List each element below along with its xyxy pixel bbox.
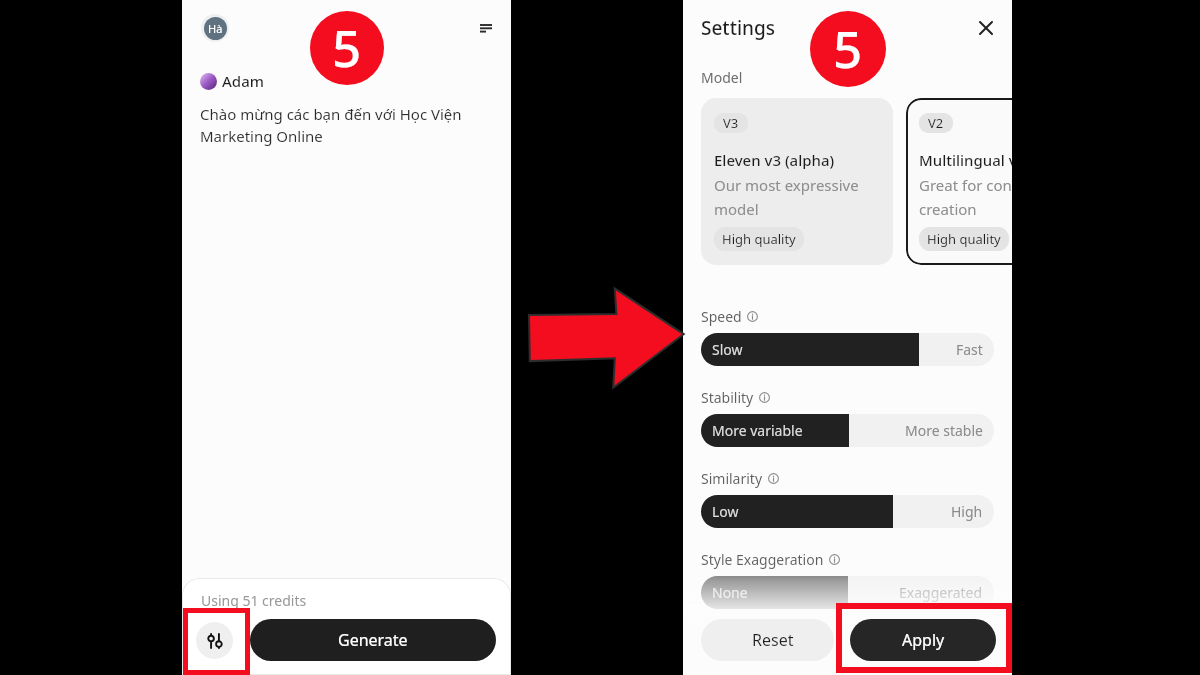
staticText: Similarity: [701, 469, 763, 488]
staticText: More variable: [712, 421, 803, 440]
button[interactable]: Close: [973, 15, 999, 41]
staticText: Stability: [701, 388, 754, 407]
staticText: V2: [928, 114, 944, 132]
button[interactable]: Generate: [250, 619, 496, 661]
staticText: Adam: [222, 71, 264, 91]
staticText: Style Exaggeration: [701, 550, 824, 569]
button[interactable]: Reset: [701, 619, 834, 661]
staticText: Slow: [712, 340, 743, 359]
staticText: High quality: [927, 230, 1001, 248]
staticText: Fast: [956, 340, 983, 359]
staticText: Reset: [752, 629, 794, 651]
staticText: Using 51 credits: [201, 591, 307, 610]
staticText: Eleven v3 (alpha): [714, 150, 835, 170]
staticText: 5: [332, 12, 362, 81]
staticText: High: [951, 502, 983, 521]
button[interactable]: More variable: [701, 414, 994, 447]
staticText: Great for content creation: [919, 175, 1012, 219]
staticText: More stable: [905, 421, 983, 440]
staticText: Exaggerated: [899, 583, 983, 602]
staticText: V3: [723, 114, 739, 132]
button[interactable]: V2: [906, 98, 1012, 265]
button[interactable]: Slow: [701, 333, 994, 366]
staticText: Chào mừng các bạn đến với Học Viện Marke…: [200, 104, 483, 147]
staticText: None: [712, 583, 748, 602]
staticText: Our most expressive model: [714, 175, 867, 219]
staticText: Settings: [701, 15, 775, 41]
staticText: Hà: [208, 21, 223, 36]
button[interactable]: Account: [201, 14, 229, 42]
staticText: Model: [701, 68, 743, 87]
staticText: High quality: [722, 230, 796, 248]
button[interactable]: Apply: [850, 619, 996, 661]
button[interactable]: Low: [701, 495, 994, 528]
button[interactable]: None: [701, 576, 994, 609]
staticText: Low: [712, 502, 739, 521]
staticText: Apply: [902, 629, 945, 651]
button[interactable]: V3: [701, 98, 893, 265]
staticText: Generate: [338, 629, 408, 651]
staticText: Multilingual v2: [919, 150, 1012, 170]
button[interactable]: Filter: [473, 15, 499, 41]
staticText: Speed: [701, 307, 742, 326]
button[interactable]: Voice settings: [196, 622, 233, 659]
staticText: 5: [833, 13, 863, 82]
